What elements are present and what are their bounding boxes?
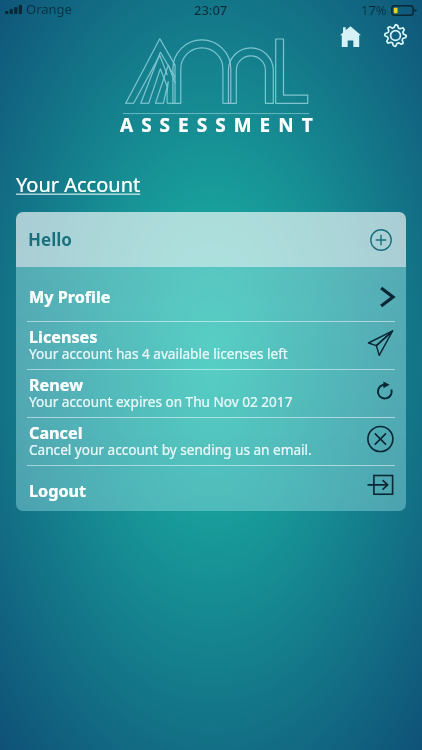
button[interactable]: Hello <box>16 212 406 267</box>
staticText: Renew <box>29 374 84 396</box>
staticText: ASSESSMENT <box>120 112 321 138</box>
staticText: Your account has 4 available licenses le… <box>29 344 288 363</box>
staticText: 23:07 <box>194 1 228 19</box>
staticText: 17% <box>361 1 387 19</box>
staticText: Hello <box>28 228 72 251</box>
button[interactable]: My Profile <box>16 267 406 321</box>
staticText: My Profile <box>29 286 111 308</box>
button[interactable]: Renew <box>16 370 406 417</box>
button[interactable]: Cancel <box>16 418 406 465</box>
staticText: Logout <box>29 480 87 502</box>
button[interactable]: Add <box>365 224 397 256</box>
button[interactable]: Settings <box>374 16 416 54</box>
staticText: Your account expires on Thu Nov 02 2017 <box>29 392 293 411</box>
button[interactable]: Home <box>329 17 371 55</box>
staticText: Cancel <box>29 422 83 444</box>
staticText: Licenses <box>29 326 98 348</box>
button[interactable]: Licenses <box>16 322 406 369</box>
button[interactable]: Logout <box>16 466 406 511</box>
staticText: Your Account <box>16 171 141 198</box>
staticText: Cancel your account by sending us an ema… <box>29 440 312 459</box>
staticText: Orange <box>26 0 72 18</box>
